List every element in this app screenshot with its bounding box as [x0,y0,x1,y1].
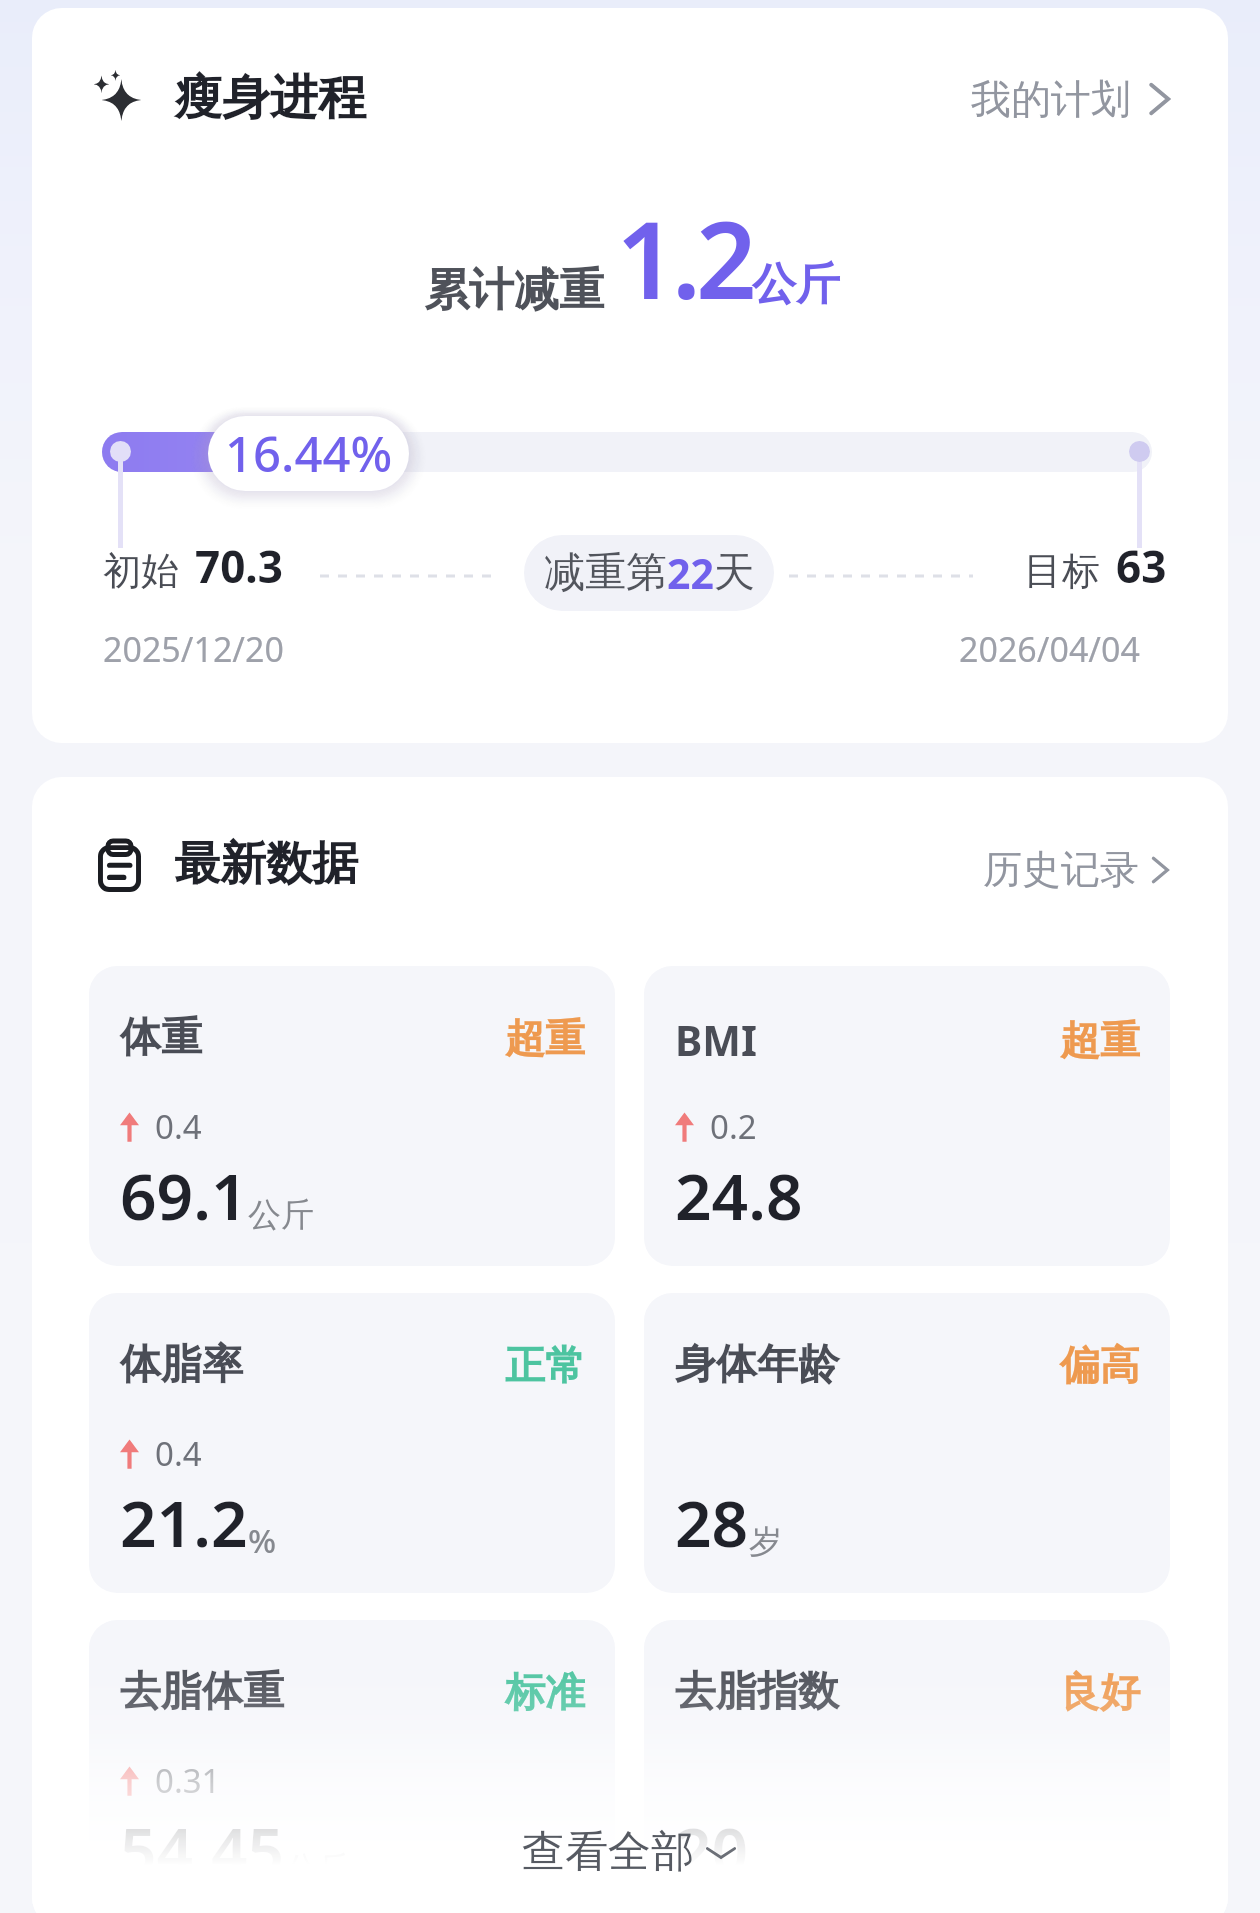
staticText: 减重第 [544,547,667,599]
staticText: 22 [667,545,714,601]
staticText: 岁 [749,1521,782,1563]
staticText: 天 [714,547,755,599]
other: Sparkle [90,65,146,121]
staticText: 查看全部 [522,1825,694,1879]
staticText: 最新数据 [174,835,358,893]
button[interactable]: 体重 [89,966,615,1266]
staticText: 公斤 [752,257,840,312]
staticText: 初始 [103,547,179,595]
staticText: 2026/04/04 [959,626,1140,672]
staticText: 身体年龄 [675,1339,839,1391]
staticText: 公斤 [248,1194,314,1236]
other: Latest data [98,841,141,892]
staticText: 超重 [1060,1015,1140,1065]
staticText: 体重 [120,1012,202,1064]
button[interactable]: BMI [644,966,1170,1266]
staticText: BMI [675,1012,757,1068]
staticText: 0.4 [155,1104,202,1149]
staticText: 0.31 [155,1758,221,1803]
staticText: 去脂体重 [120,1666,284,1718]
staticText: 历史记录 [983,845,1139,894]
staticText: 超重 [505,1013,585,1063]
staticText: 体脂率 [120,1339,243,1391]
staticText: 目标 [1024,547,1100,595]
staticText: 我的计划 [971,74,1131,124]
staticText: 标准 [505,1667,585,1717]
staticText: 63 [1116,536,1167,596]
staticText: 70.3 [195,536,283,596]
staticText: 偏高 [1060,1340,1140,1390]
staticText: 0.4 [155,1431,202,1476]
staticText: 21.2 [120,1479,248,1566]
staticText: 54.45 [120,1806,285,1893]
button[interactable]: 查看全部 [504,1817,756,1887]
staticText: 累计减重 [424,262,604,319]
staticText: 28 [675,1479,749,1566]
button[interactable]: 历史记录 [983,845,1173,894]
staticText: 去脂指数 [675,1666,839,1718]
button[interactable]: 去脂指数 [644,1620,1170,1913]
staticText: 69.1 [120,1152,248,1239]
staticText: 良好 [1060,1667,1140,1717]
staticText: 20 [675,1806,749,1893]
staticText: 2025/12/20 [103,626,284,672]
staticText: 0.2 [710,1104,757,1149]
staticText: 瘦身进程 [174,68,366,128]
button[interactable]: 身体年龄 [644,1293,1170,1593]
staticText: % [248,1518,277,1563]
staticText: 24.8 [675,1152,803,1239]
button[interactable]: 体脂率 [89,1293,615,1593]
button[interactable]: 去脂体重 [89,1620,615,1913]
staticText: 正常 [505,1340,585,1390]
button[interactable]: 我的计划 [971,74,1175,124]
staticText: 16.44% [225,420,393,487]
staticText: 1.2 [616,186,752,330]
